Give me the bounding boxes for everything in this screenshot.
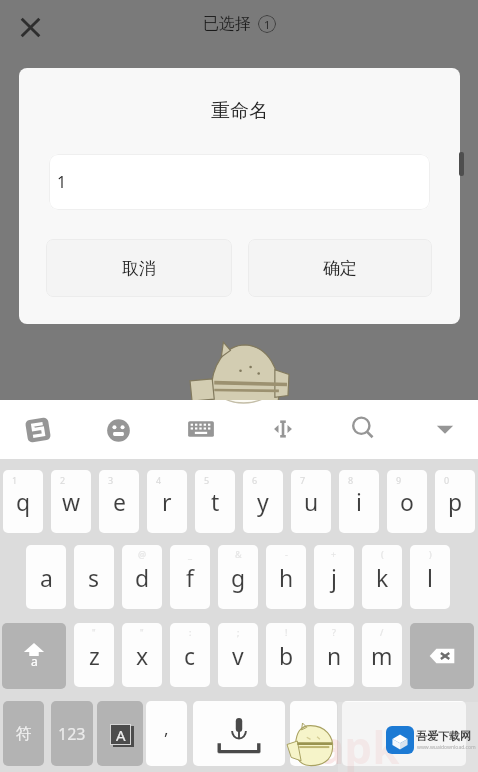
staticText: ? (332, 626, 336, 638)
staticText: , (164, 717, 169, 740)
button[interactable]: _ (170, 545, 210, 609)
button[interactable]: 1 (49, 154, 430, 210)
button[interactable]: @ (122, 545, 162, 609)
button[interactable]: 确定 (248, 239, 432, 297)
button[interactable]: Keyboard layout (175, 403, 227, 455)
button[interactable]: Symbols (3, 701, 44, 766)
button[interactable]: - (266, 545, 306, 609)
button[interactable]: / (362, 623, 402, 687)
button[interactable]: 8 (339, 470, 379, 533)
staticText: a (40, 562, 53, 593)
button[interactable]: " (74, 623, 114, 687)
staticText: " (92, 626, 96, 638)
staticText: o (400, 486, 414, 517)
staticText: 符 (16, 724, 32, 744)
button[interactable]: & (218, 545, 258, 609)
staticText: v (232, 640, 244, 671)
button[interactable]: Numbers (51, 701, 93, 766)
staticText: 重命名 (19, 99, 460, 123)
button[interactable]: Move cursor (257, 403, 309, 455)
staticText: ) (429, 548, 432, 560)
button[interactable]: 2 (51, 470, 91, 533)
staticText: 确定 (323, 258, 357, 279)
staticText: 已选择 (203, 14, 251, 34)
button[interactable]: Search (337, 402, 389, 454)
staticText: 6 (252, 474, 258, 486)
button[interactable]: Backspace (410, 623, 474, 689)
button[interactable]: s (74, 545, 114, 609)
staticText: / (380, 626, 384, 638)
button[interactable]: Period (290, 701, 337, 766)
staticText: - (285, 548, 288, 560)
staticText: a (31, 653, 38, 669)
staticText: + (331, 548, 337, 560)
button[interactable]: Enter (342, 701, 466, 766)
staticText: & (235, 548, 242, 560)
button[interactable]: ( (362, 545, 402, 609)
staticText: 8 (348, 474, 354, 486)
staticText: r (162, 486, 172, 517)
staticText: i (356, 486, 362, 517)
staticText: @ (138, 548, 147, 560)
staticText: _ (188, 548, 192, 560)
staticText: 吾爱下载网 (416, 729, 471, 743)
staticText: s (88, 562, 100, 593)
button[interactable]: ; (218, 623, 258, 687)
button[interactable]: 取消 (46, 239, 232, 297)
staticText: 2 (60, 474, 66, 486)
button[interactable]: 1 (3, 470, 43, 533)
button[interactable]: 9 (387, 470, 427, 533)
staticText: l (427, 562, 433, 593)
button[interactable]: 3 (99, 470, 139, 533)
button[interactable]: Space (193, 701, 285, 766)
staticText: b (279, 640, 294, 671)
staticText: 123 (58, 723, 86, 745)
button[interactable]: Shift (2, 623, 66, 689)
staticText: ; (237, 626, 240, 638)
staticText: A (116, 725, 126, 744)
button[interactable]: Switch language (97, 701, 143, 766)
staticText: t (211, 486, 220, 517)
button[interactable]: 0 (435, 470, 475, 533)
staticText: e (113, 486, 126, 517)
staticText: z (89, 640, 100, 671)
button[interactable]: ) (410, 545, 450, 609)
button[interactable]: a (26, 545, 66, 609)
staticText: 7 (300, 474, 306, 486)
button[interactable]: Close (12, 9, 48, 45)
staticText: : (189, 626, 192, 638)
staticText: c (184, 640, 196, 671)
button[interactable]: 5 (195, 470, 235, 533)
button[interactable]: 6 (243, 470, 283, 533)
staticText: 3 (108, 474, 114, 486)
staticText: " (140, 626, 144, 638)
button[interactable]: ! (266, 623, 306, 687)
button[interactable]: : (170, 623, 210, 687)
staticText: h (279, 562, 294, 593)
staticText: 取消 (122, 258, 156, 279)
staticText: f (186, 562, 194, 593)
staticText: ( (381, 548, 384, 560)
staticText: 1 (57, 171, 67, 193)
button[interactable]: + (314, 545, 354, 609)
button[interactable]: " (122, 623, 162, 687)
button[interactable]: Comma (146, 701, 187, 766)
staticText: x (136, 640, 149, 671)
button[interactable]: Sogou input (12, 404, 64, 456)
staticText: apk (318, 717, 400, 772)
staticText: j (331, 562, 337, 593)
staticText: m (371, 640, 393, 671)
button[interactable]: ? (314, 623, 354, 687)
staticText: y (257, 486, 269, 517)
button[interactable]: Emoji (92, 404, 144, 456)
button[interactable]: 4 (147, 470, 187, 533)
staticText: w (62, 486, 81, 517)
button[interactable]: 7 (291, 470, 331, 533)
staticText: k (376, 562, 389, 593)
staticText: g (231, 562, 246, 593)
staticText: q (16, 486, 31, 517)
staticText: ! (285, 626, 288, 638)
staticText: 9 (396, 474, 402, 486)
staticText: 5 (204, 474, 210, 486)
button[interactable]: Hide keyboard (419, 403, 471, 455)
